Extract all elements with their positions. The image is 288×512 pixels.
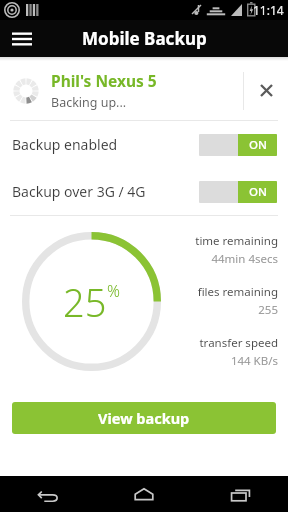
staticText: ON xyxy=(249,184,267,200)
staticText: Backup over 3G / 4G xyxy=(12,182,199,201)
staticText: Backup enabled xyxy=(12,135,199,154)
button[interactable]: Cancel backup xyxy=(244,61,288,120)
staticText: Phil's Nexus 5 xyxy=(51,70,157,91)
button[interactable]: Recent apps xyxy=(192,476,288,512)
staticText: 144 KB/s xyxy=(230,353,278,369)
staticText: ON xyxy=(249,137,267,153)
staticText: 11:14 xyxy=(253,2,284,18)
button[interactable]: View backup xyxy=(12,402,276,434)
staticText: View backup xyxy=(98,408,190,428)
button[interactable]: Open navigation menu xyxy=(0,20,44,57)
button[interactable]: Backup over 3G / 4G xyxy=(0,168,288,215)
button[interactable]: Backup enabled xyxy=(0,121,288,168)
staticText: Mobile Backup xyxy=(82,27,207,50)
staticText: 255 xyxy=(258,302,278,318)
staticText: transfer speed xyxy=(199,335,278,351)
staticText: Backing up... xyxy=(51,94,127,111)
button[interactable]: Home xyxy=(96,476,192,512)
staticText: files remaining xyxy=(197,284,278,300)
staticText: time remaining xyxy=(195,233,278,249)
staticText: 25 xyxy=(63,276,107,328)
staticText: 44min 4secs xyxy=(211,251,278,267)
button[interactable]: Back xyxy=(0,476,96,512)
staticText: % xyxy=(107,280,120,302)
